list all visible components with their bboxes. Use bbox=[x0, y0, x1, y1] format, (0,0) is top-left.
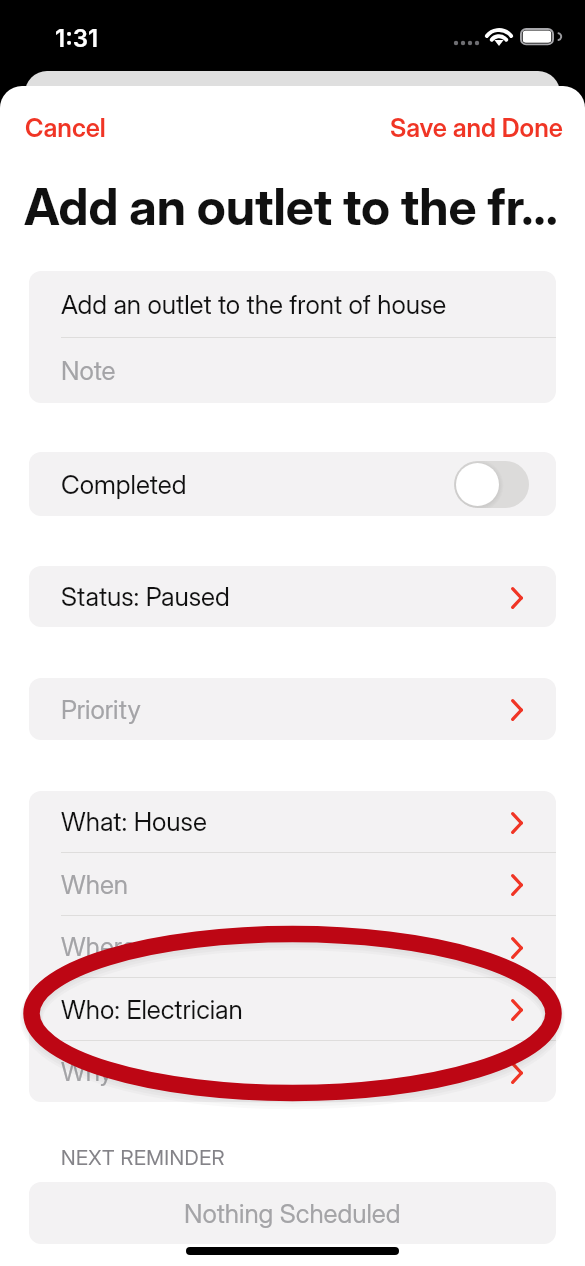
staticText: Why bbox=[61, 1056, 113, 1087]
button[interactable]: Add an outlet to the front of house bbox=[29, 271, 556, 337]
staticText: Add an outlet to the fr… bbox=[24, 177, 558, 237]
staticText: Priority bbox=[61, 694, 141, 725]
staticText: What: House bbox=[61, 806, 207, 837]
button[interactable]: Completed toggle bbox=[454, 461, 529, 508]
button[interactable]: Who: Electrician bbox=[29, 978, 556, 1040]
button[interactable]: Priority bbox=[29, 678, 556, 740]
button[interactable]: Save and Done bbox=[372, 100, 585, 155]
staticText: Add an outlet to the front of house bbox=[61, 289, 447, 320]
button[interactable]: Nothing Scheduled bbox=[29, 1182, 556, 1244]
button[interactable]: Note bbox=[29, 338, 556, 403]
staticText: Who: Electrician bbox=[61, 994, 243, 1025]
button[interactable]: Completed bbox=[29, 452, 556, 516]
button[interactable]: What: House bbox=[29, 791, 556, 852]
staticText: Cancel bbox=[25, 112, 106, 143]
staticText: 1:31 bbox=[55, 24, 99, 53]
staticText: Where bbox=[61, 931, 136, 962]
other: Battery full bbox=[520, 28, 560, 47]
button[interactable]: Why bbox=[29, 1041, 556, 1102]
other: Cellular signal bbox=[452, 39, 482, 47]
staticText: Save and Done bbox=[390, 112, 563, 143]
staticText: Completed bbox=[61, 469, 187, 500]
other: Wi-Fi connected bbox=[486, 26, 513, 46]
staticText: NEXT REMINDER bbox=[61, 1145, 225, 1170]
button[interactable]: When bbox=[29, 853, 556, 915]
staticText: Note bbox=[61, 355, 116, 386]
staticText: Status: Paused bbox=[61, 581, 230, 612]
staticText: When bbox=[61, 869, 129, 900]
staticText: Nothing Scheduled bbox=[184, 1198, 401, 1229]
button[interactable]: Cancel bbox=[0, 100, 124, 155]
button[interactable]: Status: Paused bbox=[29, 566, 556, 627]
button[interactable]: Where bbox=[29, 916, 556, 977]
